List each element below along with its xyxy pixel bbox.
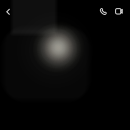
button[interactable]: Back xyxy=(0,1,18,23)
button[interactable]: Video call xyxy=(109,0,127,22)
button[interactable]: Audio call xyxy=(94,1,112,23)
